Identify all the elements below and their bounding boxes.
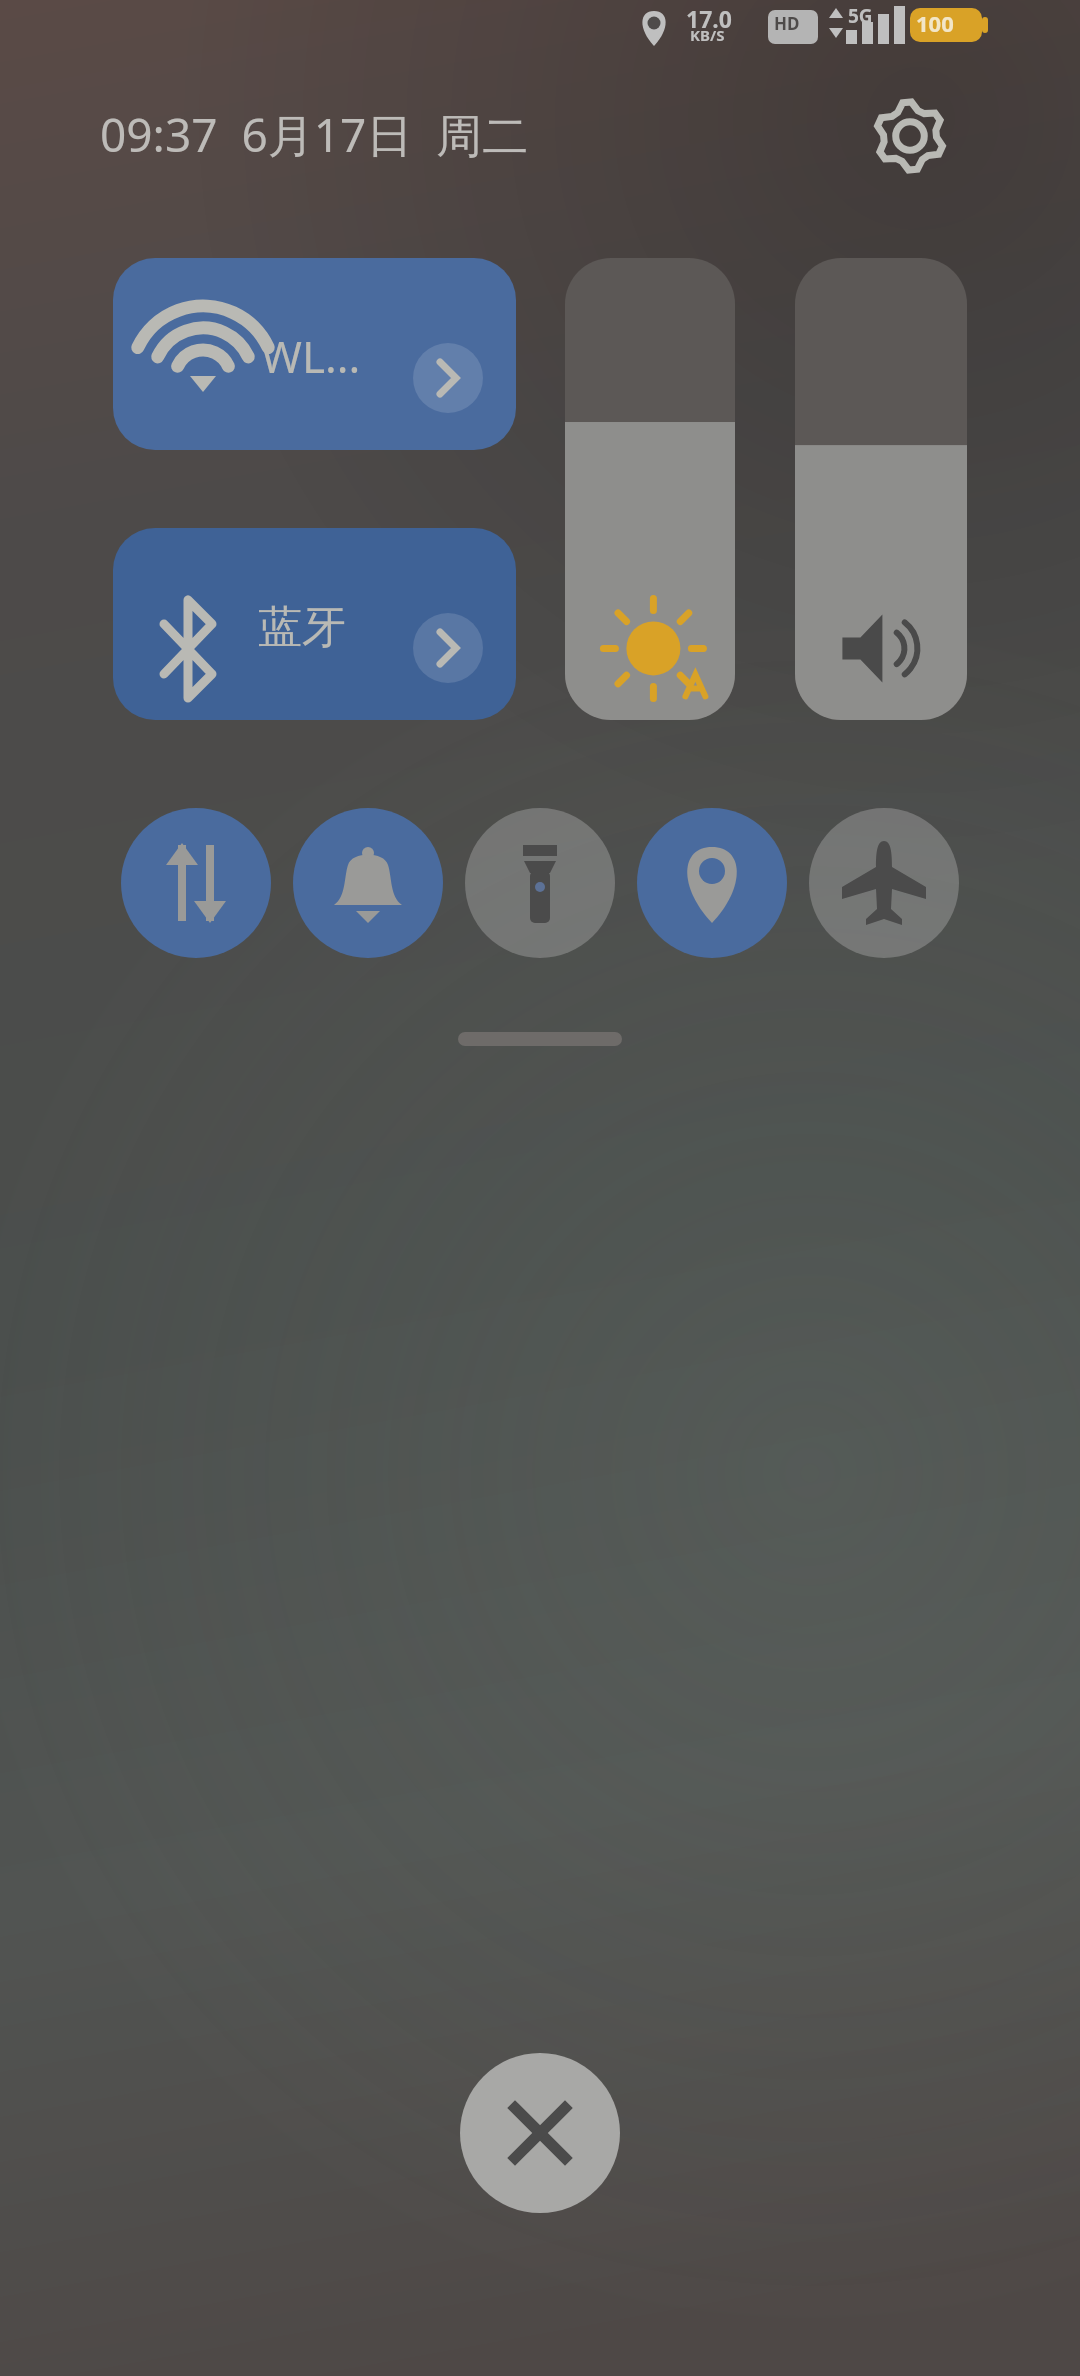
button[interactable]: Flashlight xyxy=(465,808,615,958)
button[interactable]: Volume xyxy=(795,258,967,720)
button[interactable]: Close xyxy=(460,2053,620,2213)
button[interactable]: Ring xyxy=(293,808,443,958)
button[interactable] xyxy=(113,258,516,450)
button[interactable] xyxy=(113,528,516,720)
button[interactable]: Settings xyxy=(862,88,958,184)
button[interactable]: Airplane mode xyxy=(809,808,959,958)
button[interactable]: Expand xyxy=(458,1032,622,1046)
button[interactable]: Brightness xyxy=(565,258,735,720)
button[interactable]: Location xyxy=(637,808,787,958)
button[interactable]: Mobile data xyxy=(121,808,271,958)
button[interactable] xyxy=(100,95,660,175)
